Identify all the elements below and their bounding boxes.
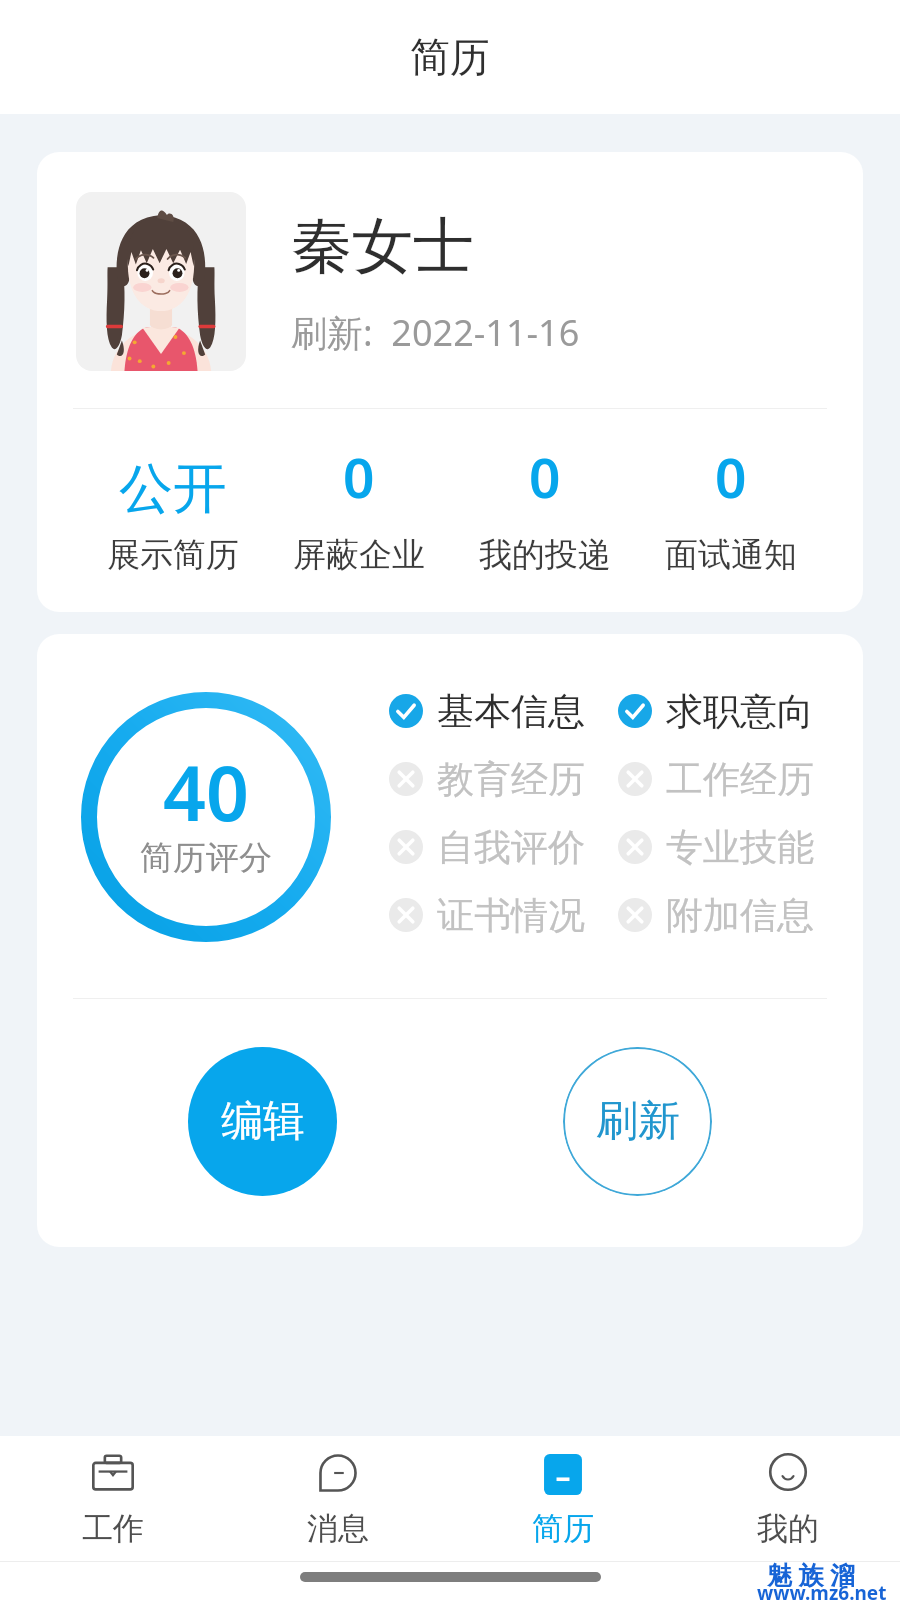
staticText: 40: [163, 741, 249, 843]
button[interactable]: 工作: [0, 1436, 225, 1561]
staticText: 屏蔽企业: [293, 534, 425, 576]
staticText: 简历评分: [140, 837, 272, 879]
button[interactable]: 刷新: [563, 1047, 712, 1196]
button[interactable]: 求职意向: [618, 677, 847, 745]
staticText: 秦女士: [291, 208, 474, 285]
staticText: 编辑: [221, 1095, 305, 1148]
staticText: 自我评价: [437, 824, 585, 871]
button[interactable]: 我的: [675, 1436, 900, 1561]
staticText: 简历: [410, 32, 490, 82]
button[interactable]: 简历: [450, 1436, 675, 1561]
staticText: 简历: [532, 1509, 594, 1548]
staticText: 刷新: 2022-11-16: [291, 308, 580, 357]
staticText: 证书情况: [437, 892, 585, 939]
button[interactable]: 编辑: [188, 1047, 337, 1196]
staticText: 专业技能: [666, 824, 814, 871]
staticText: 教育经历: [437, 756, 585, 803]
staticText: 基本信息: [437, 688, 585, 735]
staticText: www.mz6.net: [757, 1580, 887, 1600]
button[interactable]: 基本信息: [389, 677, 618, 745]
staticText: 求职意向: [666, 688, 814, 735]
staticText: 面试通知: [665, 534, 797, 576]
staticText: 消息: [307, 1509, 369, 1548]
staticText: 工作经历: [666, 756, 814, 803]
button[interactable]: 工作经历: [618, 745, 847, 813]
staticText: 魅 族 溜: [767, 1557, 856, 1591]
staticText: 我的: [757, 1509, 819, 1548]
staticText: 附加信息: [666, 892, 814, 939]
button[interactable]: 秦女士: [37, 152, 863, 371]
button[interactable]: 0: [452, 447, 638, 576]
button[interactable]: 消息: [225, 1436, 450, 1561]
staticText: 0: [343, 439, 375, 514]
button[interactable]: 0: [638, 447, 824, 576]
button[interactable]: 自我评价: [389, 813, 618, 881]
staticText: 工作: [82, 1509, 144, 1548]
staticText: 我的投递: [479, 534, 611, 576]
staticText: 刷新: [596, 1095, 680, 1148]
button[interactable]: 公开: [80, 447, 266, 576]
staticText: 0: [529, 439, 561, 514]
button[interactable]: 附加信息: [618, 881, 847, 949]
button[interactable]: 教育经历: [389, 745, 618, 813]
button[interactable]: 证书情况: [389, 881, 618, 949]
button[interactable]: 专业技能: [618, 813, 847, 881]
staticText: 展示简历: [107, 534, 239, 576]
button[interactable]: 0: [266, 447, 452, 576]
staticText: 0: [715, 439, 747, 514]
staticText: 公开: [119, 455, 227, 523]
